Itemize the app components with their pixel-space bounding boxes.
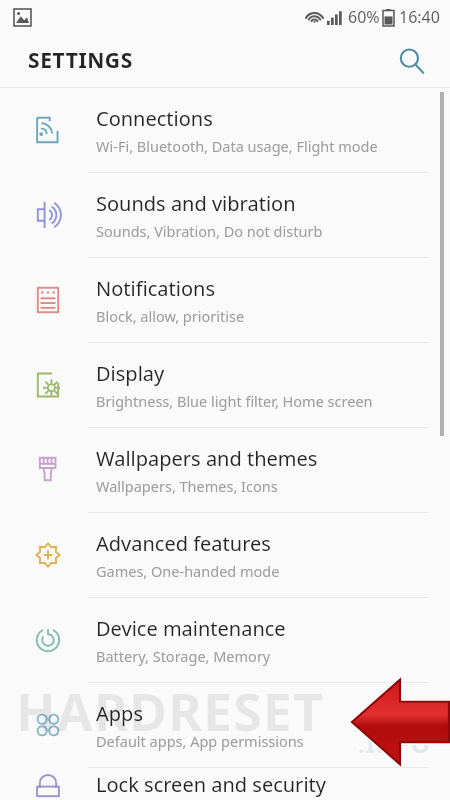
staticText: Wi-Fi, Bluetooth, Data usage, Flight mod… [96, 136, 378, 156]
button[interactable]: Display [0, 343, 450, 427]
staticText: Wallpapers, Themes, Icons [96, 476, 278, 496]
staticText: HARDRESET [16, 675, 324, 746]
button[interactable]: Notifications [0, 258, 450, 342]
button[interactable]: Apps [0, 683, 450, 767]
staticText: SETTINGS [28, 46, 133, 75]
button[interactable]: Advanced features [0, 513, 450, 597]
staticText: Notifications [96, 275, 215, 302]
staticText: .INFO [358, 727, 431, 760]
staticText: Battery, Storage, Memory [96, 646, 271, 666]
button[interactable]: Device maintenance [0, 598, 450, 682]
button[interactable]: Search [390, 39, 434, 83]
staticText: Sounds, Vibration, Do not disturb [96, 221, 323, 241]
staticText: Brightness, Blue light filter, Home scre… [96, 391, 373, 411]
staticText: Connections [96, 105, 213, 132]
staticText: Games, One-handed mode [96, 561, 280, 581]
staticText: Advanced features [96, 530, 271, 557]
staticText: Display [96, 360, 165, 387]
staticText: Wallpapers and themes [96, 445, 318, 472]
staticText: 16:40 [399, 6, 440, 28]
button[interactable]: Sounds and vibration [0, 173, 450, 257]
staticText: Block, allow, prioritise [96, 306, 245, 326]
staticText: Sounds and vibration [96, 190, 296, 217]
staticText: Default apps, App permissions [96, 731, 304, 751]
button[interactable]: Connections [0, 88, 450, 172]
staticText: Lock screen and security [96, 771, 326, 798]
staticText: Device maintenance [96, 615, 286, 642]
staticText: 60% [348, 6, 380, 28]
button[interactable]: Wallpapers and themes [0, 428, 450, 512]
button[interactable]: Lock screen and security [0, 768, 450, 800]
staticText: Apps [96, 700, 143, 727]
